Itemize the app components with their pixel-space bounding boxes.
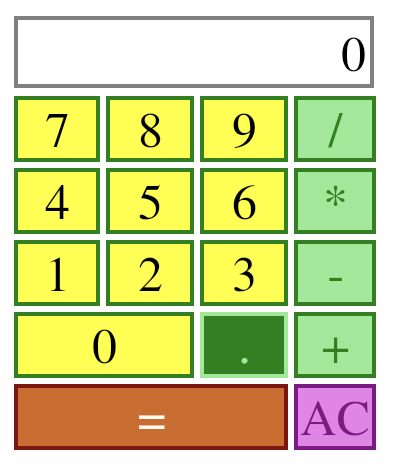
staticText: 0 bbox=[341, 31, 366, 81]
button[interactable]: Plus bbox=[294, 312, 376, 378]
staticText: 5 bbox=[138, 179, 163, 229]
button[interactable]: 2 bbox=[106, 240, 194, 306]
staticText: 7 bbox=[45, 107, 70, 157]
staticText: 6 bbox=[232, 179, 257, 229]
staticText: . bbox=[238, 323, 251, 373]
button[interactable]: 6 bbox=[200, 168, 288, 234]
button[interactable]: 5 bbox=[106, 168, 194, 234]
button[interactable]: 7 bbox=[14, 96, 100, 162]
staticText: 1 bbox=[45, 251, 70, 301]
button[interactable]: Multiply bbox=[294, 168, 376, 234]
staticText: 2 bbox=[138, 251, 163, 301]
staticText: AC bbox=[300, 395, 370, 445]
button[interactable]: Decimal point bbox=[200, 312, 288, 378]
button[interactable]: Equals bbox=[14, 384, 288, 450]
staticText: 4 bbox=[45, 179, 70, 229]
button[interactable]: 4 bbox=[14, 168, 100, 234]
staticText: 9 bbox=[232, 107, 257, 157]
button[interactable]: 9 bbox=[200, 96, 288, 162]
staticText: * bbox=[323, 179, 348, 229]
button[interactable]: 8 bbox=[106, 96, 194, 162]
button[interactable]: 0 bbox=[14, 312, 194, 378]
staticText: = bbox=[137, 395, 166, 445]
staticText: - bbox=[327, 251, 344, 301]
staticText: / bbox=[328, 107, 343, 157]
staticText: 3 bbox=[232, 251, 257, 301]
button[interactable]: 3 bbox=[200, 240, 288, 306]
button[interactable]: Divide bbox=[294, 96, 376, 162]
button[interactable]: 1 bbox=[14, 240, 100, 306]
button[interactable]: All clear bbox=[294, 384, 376, 450]
button[interactable]: Minus bbox=[294, 240, 376, 306]
staticText: 8 bbox=[138, 107, 163, 157]
staticText: 0 bbox=[92, 323, 117, 373]
staticText: + bbox=[321, 323, 350, 373]
